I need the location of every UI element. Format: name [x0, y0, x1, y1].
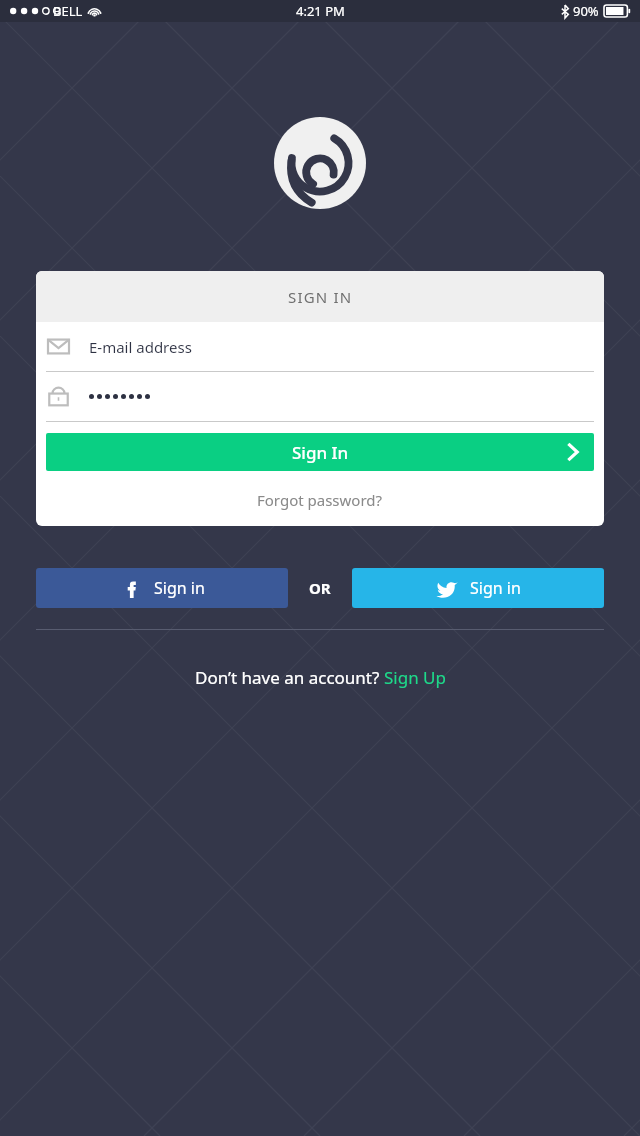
other: Email: [48, 336, 69, 357]
button[interactable]: Password: [46, 372, 594, 421]
staticText: E-mail address: [89, 337, 192, 357]
staticText: 90%: [573, 2, 599, 20]
staticText: Sign in: [470, 577, 521, 599]
staticText: Don’t have an account?: [195, 666, 384, 689]
button[interactable]: Sign Up: [384, 666, 446, 689]
button[interactable]: Sign in: [352, 568, 604, 608]
staticText: BELL: [53, 2, 83, 20]
button[interactable]: Forgot password?: [253, 486, 387, 514]
button[interactable]: Sign In: [46, 433, 594, 471]
staticText: OR: [309, 578, 331, 598]
staticText: Sign In: [292, 441, 349, 464]
button[interactable]: Email: [46, 322, 594, 371]
other: Password: [48, 386, 69, 407]
staticText: SIGN IN: [288, 287, 353, 307]
staticText: Sign in: [154, 577, 205, 599]
staticText: 4:21 PM: [296, 2, 345, 20]
button[interactable]: Sign in: [36, 568, 288, 608]
